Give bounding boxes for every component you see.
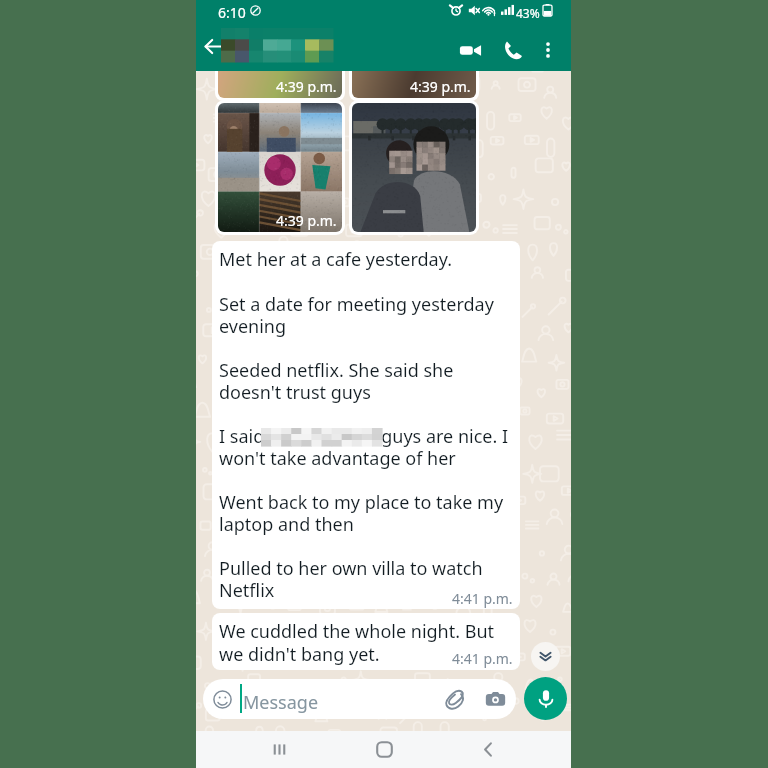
button[interactable]: Photo	[352, 103, 476, 232]
button[interactable]: Emoji	[210, 687, 234, 711]
staticText: 4:41 p.m.	[452, 649, 513, 668]
button[interactable]: Emoji	[203, 679, 516, 719]
staticText: 4:39 p.m.	[410, 77, 471, 96]
staticText: 4:41 p.m.	[452, 589, 513, 608]
staticText: 4:39 p.m.	[276, 77, 337, 96]
staticText: 6:10	[218, 3, 246, 22]
button[interactable]: Back	[467, 731, 509, 768]
button[interactable]: Video call	[453, 33, 487, 67]
button[interactable]: Camera	[482, 686, 508, 712]
button[interactable]: Met her at a cafe yesterday. Set a date …	[212, 241, 520, 609]
button[interactable]: Attach	[442, 686, 468, 712]
button[interactable]: Scroll to bottom	[531, 642, 560, 671]
button[interactable]: Record voice message	[524, 677, 567, 720]
button[interactable]: We cuddled the whole night. But we didn'…	[212, 613, 520, 670]
button[interactable]: More options	[534, 36, 562, 64]
button[interactable]: Home	[363, 731, 405, 768]
staticText: Met her at a cafe yesterday. Set a date …	[219, 247, 509, 602]
staticText: 4:39 p.m.	[276, 211, 337, 230]
button[interactable]: Photo	[218, 103, 342, 232]
button[interactable]: Recent apps	[258, 731, 300, 768]
staticText: 43%	[516, 5, 540, 21]
staticText: Message	[243, 690, 319, 715]
staticText: We cuddled the whole night. But we didn'…	[219, 619, 495, 666]
button[interactable]: Voice call	[497, 34, 529, 66]
button[interactable]: Back	[198, 31, 228, 61]
